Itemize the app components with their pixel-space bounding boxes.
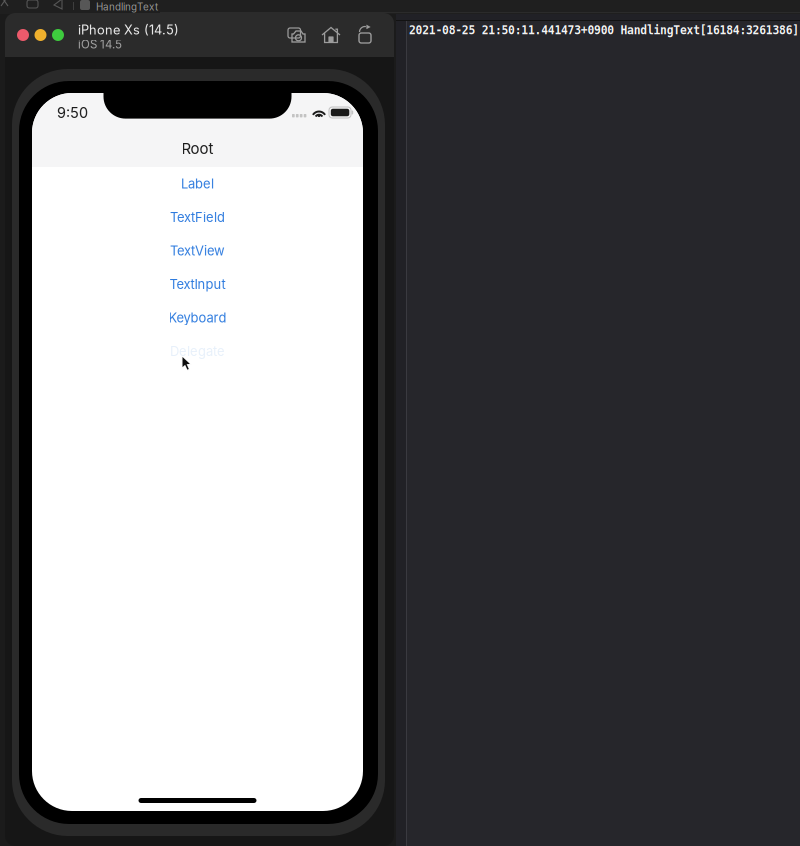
button[interactable]: TextField	[32, 200, 363, 234]
staticText: HandlingText	[96, 1, 158, 13]
button[interactable]: Label	[32, 167, 363, 200]
staticText: Root	[181, 139, 213, 158]
button[interactable]: TextInput	[32, 267, 363, 301]
staticText: TextField	[170, 209, 225, 225]
staticText: iPhone Xs (14.5)	[78, 22, 179, 37]
button[interactable]: Home	[319, 22, 345, 48]
button[interactable]: Rotate	[353, 22, 379, 48]
staticText: 9:50	[57, 104, 88, 121]
button[interactable]: Keyboard	[32, 301, 363, 334]
staticText: Keyboard	[168, 310, 226, 325]
button[interactable]: Screenshot	[285, 22, 311, 48]
button[interactable]: TextView	[32, 234, 363, 267]
staticText: iOS 14.5	[78, 37, 122, 51]
button[interactable]: Delegate	[32, 334, 363, 368]
staticText: TextView	[170, 243, 225, 258]
staticText: 2021-08-25 21:50:11.441473+0900 Handling…	[409, 23, 800, 37]
staticText: TextInput	[169, 276, 225, 292]
staticText: Delegate	[170, 343, 225, 359]
staticText: Label	[181, 176, 214, 191]
